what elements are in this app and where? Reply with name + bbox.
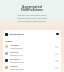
staticText: Today	[5, 39, 13, 42]
staticText: Calendar	[10, 51, 19, 54]
staticText: Pay electricity bill	[10, 61, 24, 63]
staticText: Meeting at 2 PM	[10, 54, 23, 56]
staticText: App update ready	[10, 68, 25, 70]
staticText: Aggregated Notifications	[0, 4, 64, 12]
button[interactable]: Notifications	[5, 32, 59, 36]
other: More	[56, 33, 59, 35]
button[interactable]: Messages	[5, 43, 59, 50]
staticText: Simplify your inbox with smart grouped n…	[0, 14, 64, 23]
staticText: Notifications	[9, 33, 24, 36]
staticText: Reminders	[10, 58, 21, 61]
button[interactable]: Updates	[5, 64, 59, 71]
staticText: Messages	[10, 44, 20, 47]
staticText: 3 new messages	[10, 47, 24, 49]
staticText: Updates	[10, 65, 18, 68]
button[interactable]: Calendar	[5, 50, 59, 57]
button[interactable]: Reminders	[5, 57, 59, 64]
